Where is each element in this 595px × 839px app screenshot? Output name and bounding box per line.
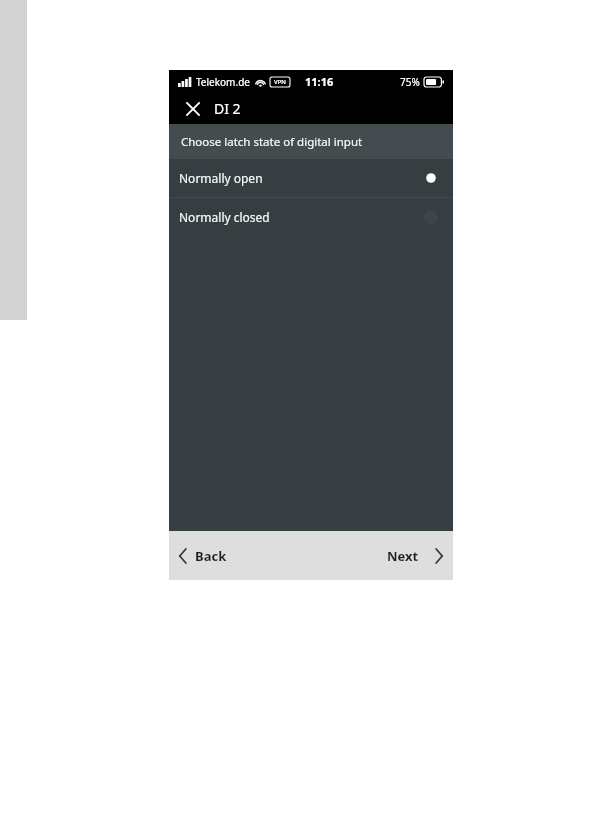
staticText: DI 2 [214, 99, 241, 118]
button[interactable]: Normally open [169, 159, 453, 197]
staticText: Telekom.de [196, 75, 250, 89]
button[interactable]: Normally closed [169, 198, 453, 236]
staticText: Back [195, 547, 227, 565]
staticText: 11:16 [305, 74, 334, 89]
staticText: Next [387, 547, 419, 565]
staticText: Choose latch state of digital input [181, 134, 363, 150]
staticText: VPN [274, 78, 287, 86]
button[interactable]: Close [181, 97, 205, 121]
staticText: Normally closed [179, 209, 270, 225]
staticText: Normally open [179, 170, 263, 186]
button[interactable]: Next [377, 531, 453, 580]
staticText: 75% [400, 75, 420, 89]
button[interactable]: Back [169, 531, 237, 580]
